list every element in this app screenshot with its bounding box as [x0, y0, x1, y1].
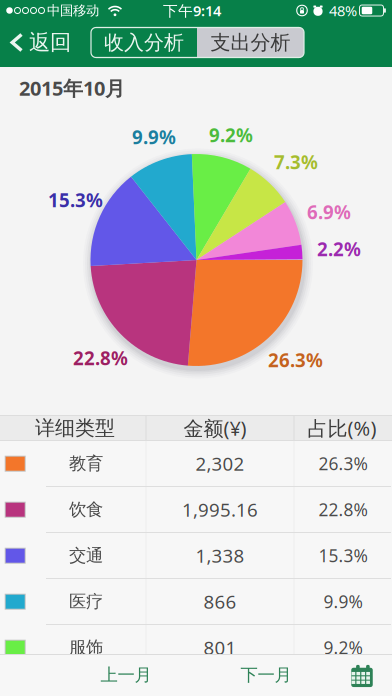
staticText: 返回: [29, 29, 71, 56]
staticText: 金额(¥): [183, 415, 246, 441]
staticText: 9.9%: [132, 125, 176, 149]
staticText: 801: [203, 635, 236, 660]
staticText: 收入分析: [104, 30, 184, 55]
staticText: 饮食: [69, 499, 103, 520]
staticText: 2.2%: [317, 237, 361, 261]
staticText: 48%: [329, 1, 357, 20]
staticText: 866: [203, 589, 236, 614]
staticText: 26.3%: [318, 452, 367, 475]
staticText: 6.9%: [307, 200, 351, 224]
staticText: 22.8%: [318, 498, 367, 521]
button[interactable]: 交通: [0, 533, 392, 578]
staticText: 中国移动: [47, 2, 99, 19]
staticText: 26.3%: [268, 348, 323, 372]
button[interactable]: 上一月: [78, 654, 174, 696]
button[interactable]: 下一月: [218, 654, 314, 696]
button[interactable]: 教育: [0, 441, 392, 486]
button[interactable]: 医疗: [0, 579, 392, 624]
staticText: 下一月: [240, 664, 291, 686]
staticText: 15.3%: [48, 188, 103, 212]
button[interactable]: 服饰: [0, 625, 392, 670]
staticText: 下午9:14: [163, 1, 221, 20]
staticText: 医疗: [69, 591, 103, 612]
staticText: 交通: [69, 545, 103, 566]
staticText: 9.9%: [323, 590, 362, 613]
staticText: 7.3%: [274, 150, 318, 174]
button[interactable]: Calendar: [341, 654, 383, 696]
staticText: 详细类型: [35, 416, 115, 440]
staticText: 2015年10月: [19, 75, 125, 101]
button[interactable]: 支出分析: [197, 27, 304, 57]
staticText: 1,995.16: [182, 497, 258, 522]
staticText: 15.3%: [318, 544, 367, 567]
staticText: 2,302: [195, 451, 244, 476]
staticText: 1,338: [195, 543, 244, 568]
staticText: 9.2%: [323, 636, 362, 659]
button[interactable]: 收入分析: [91, 27, 197, 57]
staticText: 9.2%: [209, 123, 253, 147]
button[interactable]: 饮食: [0, 487, 392, 532]
staticText: 服饰: [69, 637, 103, 658]
staticText: 教育: [69, 453, 103, 474]
staticText: 22.8%: [73, 346, 128, 370]
button[interactable]: 返回: [0, 22, 78, 62]
staticText: 占比(%): [307, 415, 376, 441]
staticText: 上一月: [100, 664, 151, 686]
staticText: 支出分析: [210, 30, 290, 55]
